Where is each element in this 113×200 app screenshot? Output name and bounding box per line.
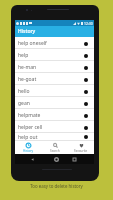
staticText: he-goat [18,76,37,83]
button[interactable]: History [15,26,94,37]
staticText: History [18,28,36,35]
button[interactable]: helpmate [15,109,94,121]
button[interactable]: More options [80,98,91,109]
staticText: help oneself [18,40,47,47]
button[interactable]: hello [15,85,94,97]
staticText: 12:30 [84,21,93,26]
button[interactable]: he-goat [15,73,94,85]
button[interactable]: More options [80,122,91,133]
staticText: Too easy to delete history [30,183,83,189]
staticText: Search [50,149,60,153]
button[interactable]: More options [80,133,91,141]
staticText: helpmate [18,112,41,119]
button[interactable]: gean [15,97,94,109]
button[interactable]: Search [42,141,68,154]
staticText: gean [18,100,30,107]
button[interactable]: Recents [71,156,78,163]
button[interactable]: More options [80,86,91,97]
button[interactable]: help [15,49,94,61]
button[interactable]: Home [52,155,60,163]
button[interactable]: he-man [15,61,94,73]
button[interactable]: More options [80,62,91,73]
staticText: History [23,149,34,153]
button[interactable]: More options [80,38,91,49]
button[interactable]: More options [80,74,91,85]
button[interactable]: More options [80,50,91,61]
staticText: help out [18,134,38,141]
button[interactable]: helper cell [15,121,94,133]
button[interactable]: help out [15,133,94,141]
button[interactable]: History [15,141,42,154]
staticText: helper cell [18,124,43,131]
staticText: Favourite [74,149,88,153]
button[interactable]: Back [29,156,36,163]
staticText: hello [18,88,30,95]
button[interactable]: help oneself [15,37,94,49]
staticText: help [18,52,29,59]
staticText: he-man [18,64,37,71]
button[interactable]: Favourite [68,141,94,154]
button[interactable]: More options [80,110,91,121]
